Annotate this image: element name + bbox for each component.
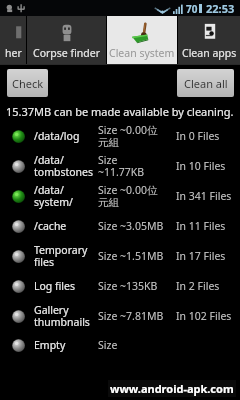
staticText: Size ~135KB (98, 279, 158, 293)
button[interactable]: her (0, 16, 26, 65)
staticText: 70 (186, 2, 198, 16)
staticText: In 102 Files (176, 309, 232, 323)
staticText: In 2 Files (176, 279, 220, 293)
staticText: Size ~7.81MB (98, 309, 164, 323)
button[interactable]: /data/log (0, 121, 240, 151)
staticText: her (5, 46, 22, 60)
staticText: /cache (34, 219, 67, 233)
staticText: Size ~11.77KB (98, 153, 145, 179)
button[interactable]: Log files (0, 271, 240, 301)
staticText: Check (12, 76, 44, 91)
staticText: Size ~0.00位 元組 (98, 183, 158, 209)
staticText: www.android-apk.com (110, 381, 234, 396)
staticText: Clean apps (182, 46, 237, 60)
staticText: Corpse finder (33, 46, 100, 60)
button[interactable]: Temporary files (0, 241, 240, 271)
staticText: Empty (34, 338, 66, 352)
button[interactable]: Empty (0, 331, 240, 359)
button[interactable]: /data/system/ dropbox (0, 181, 240, 211)
button[interactable]: Clean apps (178, 16, 240, 65)
staticText: Gallery thumbnails (34, 303, 90, 329)
button[interactable]: Gallery thumbnails (0, 301, 240, 331)
staticText: Clean system (109, 46, 175, 60)
staticText: /data/log (34, 129, 80, 143)
staticText: Size (98, 338, 118, 352)
button[interactable]: Clean all (177, 69, 234, 97)
staticText: /data/system/ dropbox (34, 183, 98, 209)
staticText: Size ~0.00位 元組 (98, 123, 158, 149)
staticText: In 11 Files (176, 219, 226, 233)
staticText: In 17 Files (176, 249, 226, 263)
staticText: Clean all (184, 76, 228, 91)
staticText: Size ~1.51MB (98, 249, 164, 263)
button[interactable]: /data/ tombstones (0, 151, 240, 181)
button[interactable]: Corpse finder (27, 16, 106, 65)
staticText: Log files (34, 279, 76, 293)
button[interactable]: Clean system (107, 16, 177, 65)
staticText: 15.37MB can be made available by cleanin… (6, 104, 234, 119)
button[interactable]: Check (7, 69, 48, 97)
staticText: /data/ tombstones (34, 153, 94, 179)
staticText: Temporary files (34, 243, 88, 269)
staticText: Size ~3.05MB (98, 219, 164, 233)
staticText: 22:53 (206, 1, 235, 16)
staticText: In 341 Files (176, 189, 232, 203)
staticText: In 10 Files (176, 159, 226, 173)
button[interactable]: /cache (0, 211, 240, 241)
staticText: In 0 Files (176, 129, 220, 143)
